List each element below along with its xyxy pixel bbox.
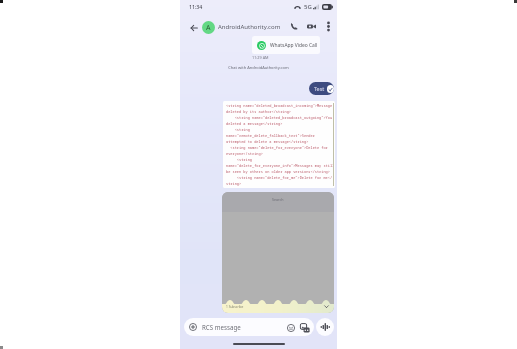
button[interactable]: WhatsApp Video Call — [252, 36, 320, 54]
staticText: A — [206, 23, 211, 33]
button[interactable]: Gallery — [299, 322, 310, 333]
button[interactable]: A — [202, 21, 215, 34]
staticText: name="remote_delete_fallback_text">Sende… — [226, 133, 315, 138]
button[interactable]: Back — [186, 20, 201, 35]
staticText: WhatsApp Video Call — [270, 42, 318, 49]
button[interactable]: <string name="deleted_broadcast_incoming… — [223, 101, 335, 188]
staticText: everyone</string> — [226, 151, 263, 156]
button[interactable]: Video call — [304, 19, 318, 33]
button[interactable]: Voice message — [316, 318, 334, 336]
staticText: be seen by others on older app versions<… — [226, 169, 330, 174]
staticText: AndroidAuthority.com — [218, 23, 281, 31]
staticText: <string — [226, 157, 252, 162]
staticText: Test — [314, 85, 325, 92]
staticText: 1 Subscribe — [226, 305, 244, 309]
button[interactable]: Emoji — [285, 322, 296, 333]
staticText: deleted a message</string> — [226, 121, 283, 126]
staticText: 5G — [304, 3, 312, 11]
staticText: <string name="deleted_broadcast_outgoing… — [226, 115, 333, 120]
staticText: 11:29 AM — [252, 55, 269, 60]
staticText: <string name="deleted_broadcast_incoming… — [226, 103, 333, 108]
staticText: string> — [226, 181, 242, 186]
button[interactable]: Search — [222, 192, 334, 313]
staticText: Search — [272, 197, 284, 202]
staticText: name="delete_for_everyone_info">Messages… — [226, 163, 335, 168]
button[interactable]: Call — [287, 19, 301, 33]
staticText: attempted to delete a message</string> — [226, 139, 309, 144]
staticText: <string — [226, 127, 250, 132]
staticText: RCS message — [202, 323, 241, 331]
staticText: deleted by its author</string> — [226, 109, 291, 114]
button[interactable]: More options — [321, 19, 335, 33]
button[interactable]: RCS message — [184, 318, 314, 336]
staticText: 11:34 — [189, 3, 203, 10]
button[interactable]: Test — [309, 82, 334, 95]
staticText: <string name="delete_for_me">Delete for … — [226, 175, 333, 180]
staticText: Chat with AndroidAuthority.com — [180, 65, 337, 70]
staticText: <string name="delete_for_everyone">Delet… — [226, 145, 328, 150]
